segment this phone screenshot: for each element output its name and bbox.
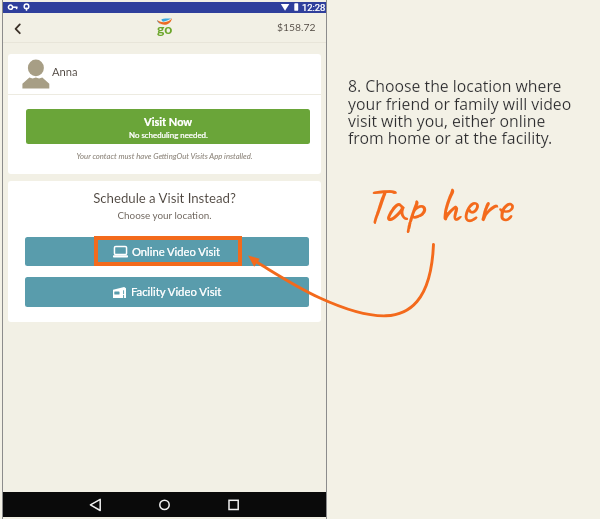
button[interactable]: $158.72 (277, 21, 316, 33)
staticText: Tap here (364, 173, 512, 237)
staticText: go (157, 20, 173, 37)
button[interactable]: Facility Video Visit (25, 277, 309, 307)
staticText: Visit Now (144, 115, 193, 128)
staticText: Your contact must have GettingOut Visits… (8, 151, 321, 160)
button[interactable]: Back (7, 13, 35, 43)
button[interactable]: Visit Now (26, 109, 310, 144)
staticText: Anna (52, 65, 78, 78)
staticText: Schedule a Visit Instead? (8, 190, 321, 206)
staticText: 12:28 (302, 2, 326, 13)
staticText: No scheduling needed. (129, 130, 208, 139)
button[interactable]: Online Video Visit (25, 237, 309, 266)
staticText: Choose your location. (8, 209, 321, 221)
button[interactable]: Anna (8, 54, 321, 94)
staticText: 8. Choose the location where your friend… (348, 75, 572, 148)
staticText: Facility Video Visit (131, 285, 222, 299)
staticText: Online Video Visit (132, 245, 221, 258)
